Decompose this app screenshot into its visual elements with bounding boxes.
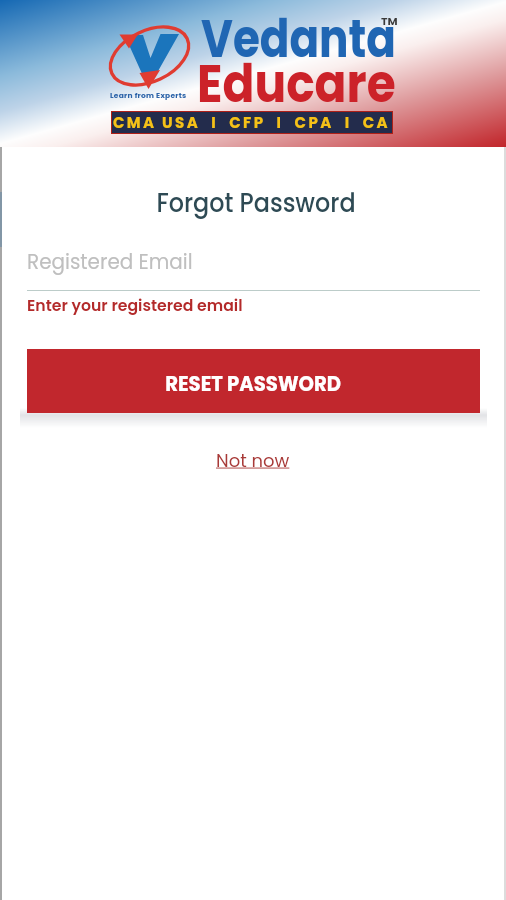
staticText: Registered Email xyxy=(27,247,193,276)
staticText: CMA USA I CFP I CPA I CA xyxy=(113,112,391,133)
staticText: Forgot Password xyxy=(28,184,484,221)
staticText: RESET PASSWORD xyxy=(165,369,342,398)
staticText: Enter your registered email xyxy=(27,294,243,317)
staticText: Learn from Experts xyxy=(110,90,187,100)
button[interactable]: RESET PASSWORD xyxy=(27,349,480,413)
button[interactable]: Not now xyxy=(202,443,304,478)
staticText: Not now xyxy=(216,448,290,473)
staticText: Educare xyxy=(197,47,396,120)
staticText: Vedanta xyxy=(201,2,397,75)
staticText: TM xyxy=(381,13,398,28)
